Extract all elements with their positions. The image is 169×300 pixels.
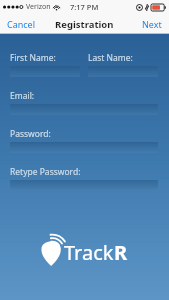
staticText: Retype Password:: [10, 166, 81, 178]
button[interactable]: [88, 66, 158, 77]
staticText: Last Name:: [88, 52, 133, 64]
button[interactable]: Next: [135, 15, 169, 33]
staticText: 7:17 PM: [70, 2, 99, 12]
button[interactable]: [10, 142, 158, 153]
staticText: Email:: [10, 90, 35, 102]
button[interactable]: [10, 104, 158, 115]
other: TrackR logo: [41, 237, 63, 267]
button[interactable]: [10, 66, 80, 77]
staticText: Next: [142, 18, 162, 30]
staticText: Track: [64, 239, 114, 266]
staticText: Password:: [10, 128, 51, 140]
staticText: Verizon: [26, 2, 51, 12]
staticText: Registration: [55, 18, 114, 31]
button[interactable]: Cancel: [0, 15, 43, 33]
staticText: First Name:: [10, 52, 56, 64]
staticText: Cancel: [7, 18, 36, 30]
staticText: R: [114, 239, 128, 266]
button[interactable]: [10, 180, 158, 191]
